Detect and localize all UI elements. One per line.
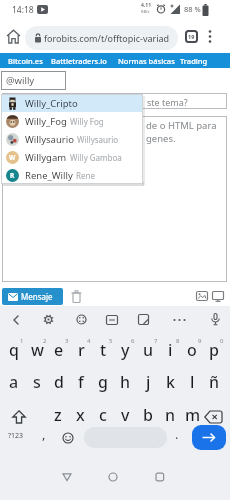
staticText: 88 % — [184, 4, 201, 14]
button[interactable] — [62, 432, 74, 444]
staticText: d — [54, 371, 64, 393]
staticText: Willy Gamboa — [70, 152, 122, 163]
staticText: Willy_Fog — [25, 115, 67, 128]
staticText: Willysaurio — [77, 134, 119, 145]
staticText: 5 — [109, 337, 113, 345]
button[interactable]: forobits.com/t/offtopic-variad — [25, 26, 178, 50]
staticText: b — [143, 404, 153, 426]
staticText: genes. — [146, 132, 176, 145]
button[interactable]: W — [1, 148, 143, 166]
staticText: R — [10, 171, 15, 180]
staticText: Willygam — [25, 151, 67, 164]
staticText: f — [78, 371, 84, 393]
button[interactable] — [71, 290, 82, 303]
button[interactable] — [173, 318, 186, 322]
button[interactable] — [206, 29, 214, 44]
staticText: 6 — [131, 337, 135, 345]
button[interactable] — [211, 313, 220, 326]
staticText: v — [121, 404, 130, 426]
staticText: 7 — [154, 337, 158, 345]
button[interactable]: Willy_Fog — [1, 112, 143, 130]
staticText: Trading — [180, 56, 208, 66]
staticText: n — [165, 404, 176, 426]
staticText: a — [9, 371, 19, 393]
staticText: Mensaje — [21, 291, 53, 302]
staticText: 4 — [87, 337, 91, 345]
staticText: 2 — [43, 337, 47, 345]
staticText: 3 — [65, 337, 69, 345]
staticText: ñ — [209, 371, 220, 393]
staticText: ste tema? — [147, 96, 188, 108]
staticText: l — [190, 371, 195, 393]
button[interactable] — [76, 314, 87, 325]
staticText: Battletraders.io — [51, 56, 107, 66]
button[interactable] — [62, 472, 72, 482]
staticText: u — [143, 339, 154, 361]
staticText: j — [146, 371, 151, 393]
staticText: g — [98, 371, 108, 393]
staticText: W — [9, 153, 16, 162]
button[interactable] — [106, 315, 118, 325]
button[interactable]: 19 — [185, 30, 198, 43]
staticText: m — [185, 404, 201, 426]
button[interactable] — [204, 410, 223, 424]
staticText: y — [121, 339, 130, 361]
staticText: z — [54, 404, 62, 426]
staticText: @willy — [6, 74, 35, 87]
button[interactable] — [43, 314, 54, 325]
button[interactable] — [6, 29, 21, 44]
staticText: q — [9, 339, 19, 361]
staticText: Bitcoin.es — [8, 56, 43, 66]
staticText: s — [33, 371, 41, 393]
staticText: 14:18 — [12, 4, 34, 16]
staticText: e — [54, 339, 64, 361]
staticText: Willy_Cripto — [25, 97, 78, 110]
staticText: . — [175, 425, 179, 443]
staticText: p — [209, 339, 219, 361]
staticText: 4.11 — [141, 2, 151, 9]
staticText: x — [76, 404, 85, 426]
staticText: k — [166, 371, 175, 393]
button[interactable]: Willysaurio — [1, 130, 143, 148]
staticText: forobits.com/t/offtopic-variad — [44, 32, 170, 44]
staticText: o — [187, 339, 197, 361]
staticText: w — [31, 339, 44, 361]
button[interactable] — [192, 425, 226, 450]
button[interactable] — [138, 314, 149, 325]
staticText: r — [78, 339, 85, 361]
staticText: Rene_Willy — [25, 169, 73, 182]
staticText: h — [120, 371, 131, 393]
button[interactable] — [12, 315, 20, 325]
staticText: c — [99, 404, 107, 426]
staticText: Willysaurio — [25, 133, 74, 146]
button[interactable] — [12, 410, 26, 424]
button[interactable] — [212, 291, 224, 302]
staticText: t — [100, 339, 107, 361]
button[interactable] — [196, 291, 208, 301]
staticText: 9 — [198, 337, 202, 345]
staticText: Rene — [76, 170, 95, 181]
staticText: Willy Fog — [70, 116, 104, 127]
staticText: 1 — [20, 337, 24, 345]
button[interactable]: Mensaje — [2, 288, 63, 305]
staticText: i — [168, 339, 173, 361]
staticText: de o HTML para — [146, 119, 217, 132]
staticText: Normas básicas — [118, 56, 175, 66]
staticText: , — [42, 425, 46, 443]
button[interactable]: R — [1, 166, 143, 184]
button[interactable] — [108, 472, 118, 482]
staticText: KB/s — [141, 9, 150, 14]
staticText: ?123 — [8, 431, 24, 441]
button[interactable] — [155, 472, 165, 482]
staticText: 8 — [176, 337, 180, 345]
staticText: 19 — [188, 33, 195, 40]
button[interactable]: Willy_Cripto — [1, 94, 143, 112]
staticText: 0 — [220, 337, 224, 345]
